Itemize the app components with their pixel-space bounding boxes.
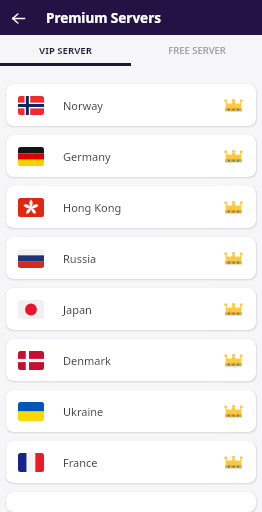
button[interactable]: FREE SERVER	[131, 35, 262, 66]
staticText: Denmark	[63, 353, 223, 368]
staticText: VIP SERVER	[39, 44, 92, 57]
staticText: Ukraine	[63, 404, 223, 419]
staticText: Russia	[63, 251, 223, 266]
button[interactable]: Ukraine	[6, 390, 256, 432]
button[interactable]: Germany	[6, 135, 256, 177]
staticText: France	[63, 455, 223, 470]
staticText: Norway	[63, 98, 223, 113]
button[interactable]: Hong Kong	[6, 186, 256, 228]
button[interactable]: VIP SERVER	[0, 35, 131, 66]
staticText: Hong Kong	[63, 200, 223, 215]
staticText: Germany	[63, 149, 223, 164]
button[interactable]: Back	[5, 5, 31, 31]
button[interactable]: Denmark	[6, 339, 256, 381]
staticText: FREE SERVER	[168, 44, 226, 57]
button[interactable]: Japan	[6, 288, 256, 330]
button[interactable]: Russia	[6, 237, 256, 279]
staticText: Japan	[63, 302, 223, 317]
button[interactable]: France	[6, 441, 256, 483]
button[interactable]: Norway	[6, 84, 256, 126]
staticText: Premium Servers	[46, 9, 161, 27]
